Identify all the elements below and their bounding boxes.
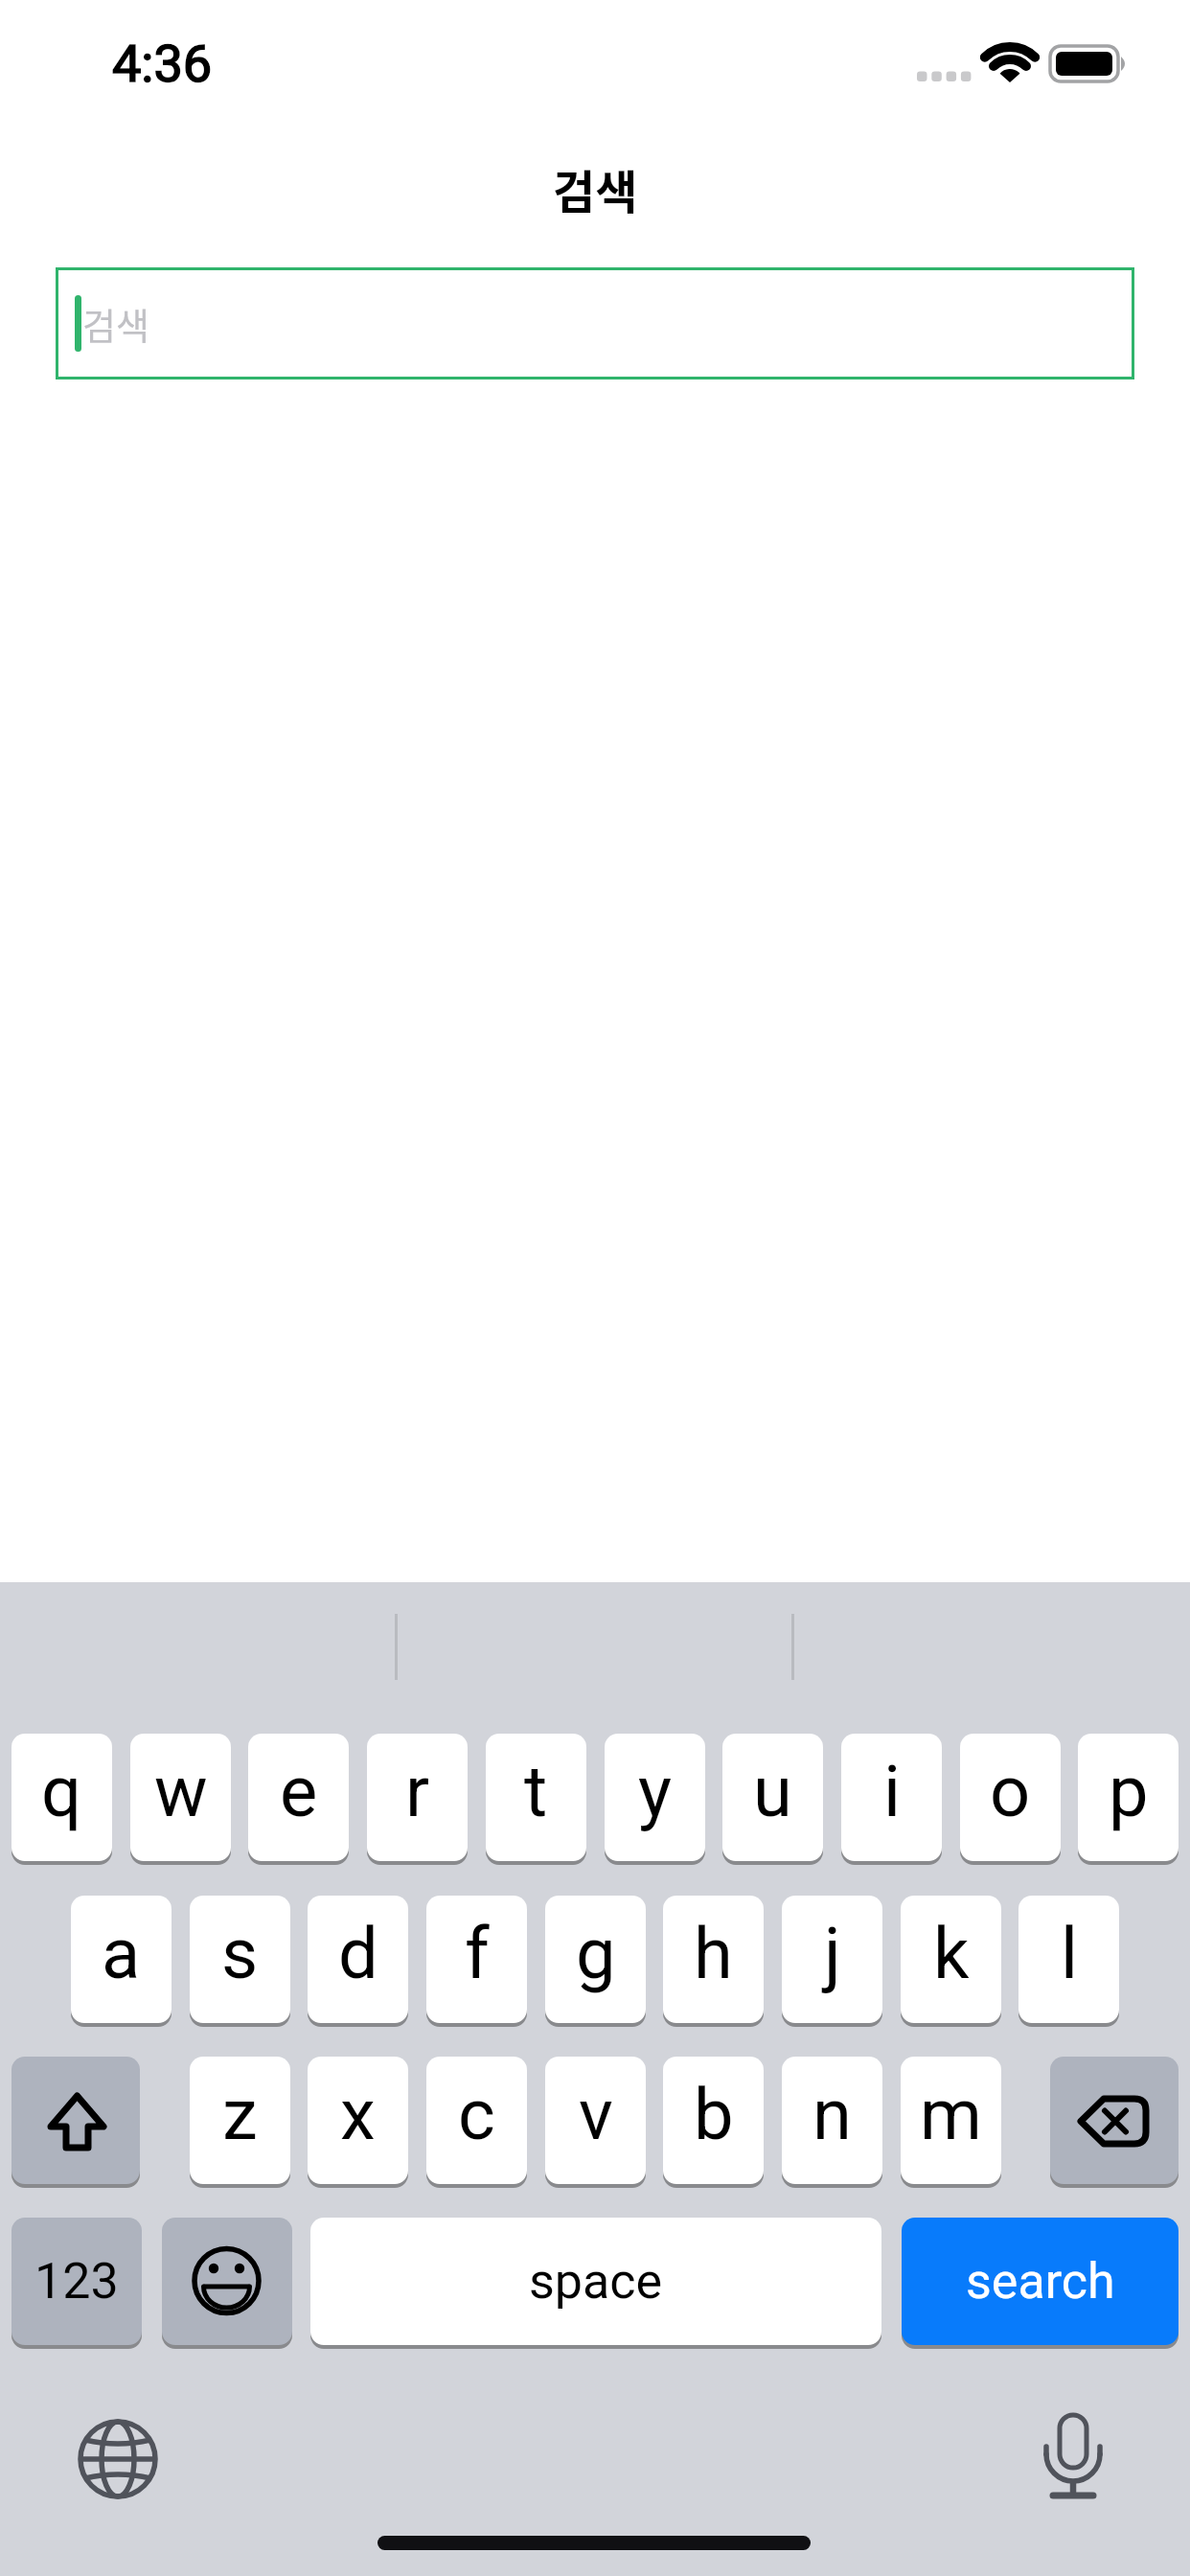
staticText: 4:36: [112, 34, 213, 94]
staticText: q: [41, 1750, 82, 1833]
staticText: y: [638, 1750, 673, 1833]
staticText: l: [1061, 1912, 1078, 1995]
button[interactable]: u: [722, 1734, 823, 1861]
button[interactable]: o: [960, 1734, 1061, 1861]
button[interactable]: v: [545, 2057, 646, 2184]
staticText: u: [753, 1750, 792, 1833]
staticText: k: [933, 1912, 970, 1995]
button[interactable]: p: [1078, 1734, 1179, 1861]
button[interactable]: g: [545, 1896, 646, 2023]
button[interactable]: b: [663, 2057, 764, 2184]
staticText: t: [524, 1750, 548, 1833]
button[interactable]: a: [71, 1896, 172, 2023]
staticText: 123: [34, 2252, 119, 2311]
button[interactable]: f: [426, 1896, 527, 2023]
button[interactable]: s: [190, 1896, 290, 2023]
button[interactable]: l: [1018, 1896, 1119, 2023]
staticText: x: [340, 2073, 376, 2156]
button[interactable]: n: [782, 2057, 882, 2184]
button[interactable]: m: [901, 2057, 1001, 2184]
staticText: search: [966, 2252, 1115, 2311]
staticText: b: [694, 2073, 734, 2156]
button[interactable]: 검색: [56, 267, 1134, 379]
staticText: w: [154, 1750, 208, 1833]
staticText: m: [920, 2073, 982, 2156]
button[interactable]: i: [841, 1734, 942, 1861]
button[interactable]: t: [486, 1734, 586, 1861]
staticText: c: [458, 2073, 495, 2156]
button[interactable]: [11, 2057, 140, 2184]
staticText: j: [824, 1912, 841, 1995]
staticText: e: [280, 1750, 318, 1833]
staticText: p: [1109, 1750, 1149, 1833]
button[interactable]: j: [782, 1896, 882, 2023]
staticText: 검색: [553, 155, 638, 222]
button[interactable]: [162, 2218, 292, 2345]
staticText: h: [694, 1912, 733, 1995]
staticText: f: [465, 1912, 490, 1995]
staticText: s: [221, 1912, 259, 1995]
staticText: a: [102, 1912, 141, 1995]
button[interactable]: c: [426, 2057, 527, 2184]
staticText: o: [990, 1750, 1031, 1833]
staticText: v: [579, 2073, 613, 2156]
button[interactable]: q: [11, 1734, 112, 1861]
button[interactable]: d: [308, 1896, 408, 2023]
button[interactable]: search: [902, 2218, 1179, 2345]
staticText: space: [529, 2252, 663, 2311]
button[interactable]: w: [130, 1734, 231, 1861]
button[interactable]: k: [901, 1896, 1001, 2023]
button[interactable]: 123: [11, 2218, 142, 2345]
staticText: d: [338, 1912, 378, 1995]
staticText: g: [576, 1912, 616, 1995]
staticText: i: [883, 1750, 901, 1833]
button[interactable]: r: [367, 1734, 468, 1861]
button[interactable]: e: [248, 1734, 349, 1861]
button[interactable]: space: [310, 2218, 881, 2345]
button[interactable]: h: [663, 1896, 764, 2023]
button[interactable]: z: [190, 2057, 290, 2184]
staticText: r: [405, 1750, 430, 1833]
staticText: 검색: [82, 297, 149, 350]
button[interactable]: x: [308, 2057, 408, 2184]
button[interactable]: y: [605, 1734, 705, 1861]
staticText: n: [812, 2073, 852, 2156]
button[interactable]: [1050, 2057, 1179, 2184]
staticText: z: [222, 2073, 258, 2156]
